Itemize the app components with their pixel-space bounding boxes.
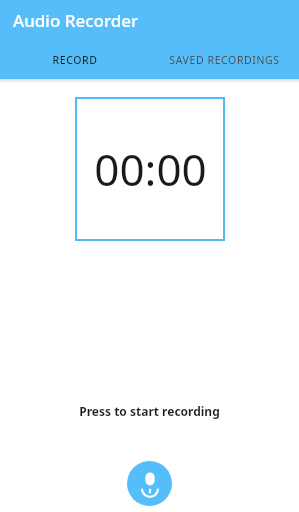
staticText: SAVED RECORDINGS xyxy=(169,53,280,67)
staticText: Audio Recorder xyxy=(13,9,139,32)
staticText: 00:00 xyxy=(94,139,207,199)
button[interactable]: SAVED RECORDINGS xyxy=(149,44,299,76)
button[interactable]: 00:00 xyxy=(75,97,225,241)
staticText: Press to start recording xyxy=(79,403,220,419)
staticText: RECORD xyxy=(52,53,98,67)
button[interactable]: Start recording xyxy=(127,461,172,506)
button[interactable]: RECORD xyxy=(0,44,149,76)
